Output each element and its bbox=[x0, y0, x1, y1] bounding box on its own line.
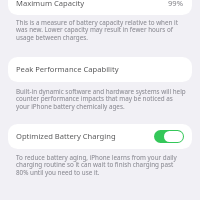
staticText: Optimized Battery Charging bbox=[16, 131, 116, 141]
staticText: 99% bbox=[168, 0, 183, 8]
button[interactable]: Maximum Capacity bbox=[8, 0, 192, 15]
staticText: To reduce battery aging, iPhone learns f… bbox=[16, 153, 186, 177]
staticText: Peak Performance Capability bbox=[16, 64, 119, 74]
button[interactable]: Optimized Battery Charging bbox=[8, 124, 192, 149]
button[interactable]: Optimized Battery Charging bbox=[154, 130, 184, 143]
staticText: This is a measure of battery capacity re… bbox=[16, 18, 186, 42]
button[interactable]: Peak Performance Capability bbox=[8, 57, 192, 82]
staticText: Maximum Capacity bbox=[16, 0, 85, 8]
staticText: Built-in dynamic software and hardware s… bbox=[16, 87, 186, 111]
